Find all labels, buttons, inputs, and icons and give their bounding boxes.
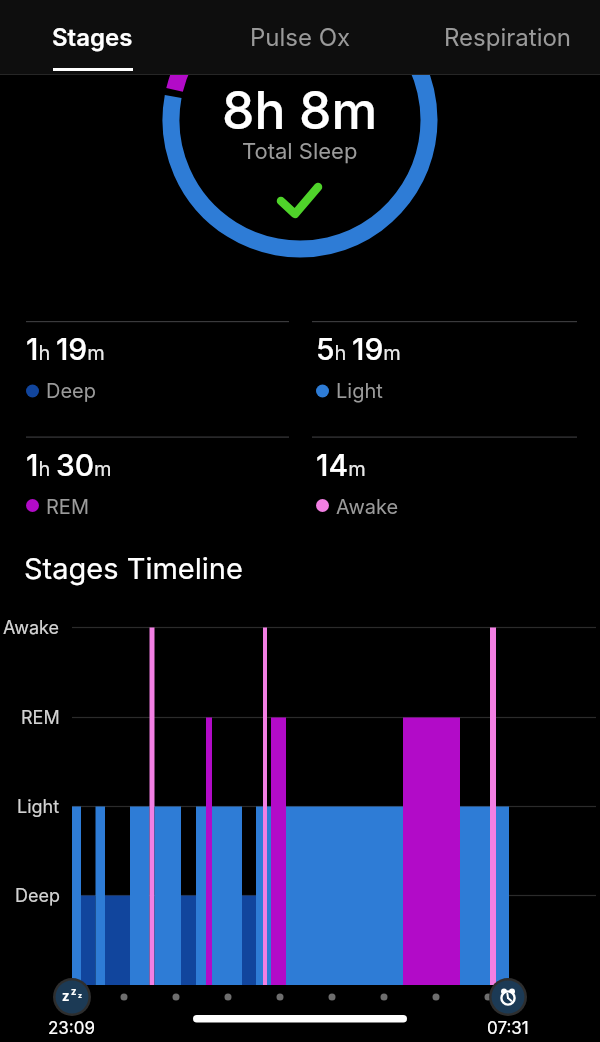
button[interactable] xyxy=(53,978,91,1016)
staticText: 8h 8m xyxy=(222,79,378,141)
staticText: Awake xyxy=(336,495,399,519)
staticText: Light xyxy=(336,379,383,403)
staticText: 14m xyxy=(316,447,366,483)
staticText: REM xyxy=(21,707,60,729)
staticText: Deep xyxy=(15,885,60,907)
staticText: 1h 19m xyxy=(26,331,105,367)
staticText: Light xyxy=(17,796,60,818)
button[interactable]: 07:31 xyxy=(458,1015,558,1041)
button[interactable]: 1h 30m xyxy=(26,447,288,552)
staticText: 07:31 xyxy=(487,1018,529,1039)
button[interactable]: Pulse Ox xyxy=(236,0,364,75)
button[interactable]: 14m xyxy=(316,447,578,552)
staticText: 5h 19m xyxy=(316,331,401,367)
staticText: z xyxy=(71,986,77,997)
staticText: Total Sleep xyxy=(242,138,358,165)
button[interactable] xyxy=(489,978,527,1016)
staticText: REM xyxy=(46,495,89,519)
staticText: Pulse Ox xyxy=(250,23,351,52)
staticText: Stages xyxy=(52,23,133,52)
button[interactable]: 23:09 xyxy=(22,1015,122,1041)
staticText: 1h 30m xyxy=(26,447,112,483)
staticText: z xyxy=(62,988,70,1004)
staticText: Awake xyxy=(3,617,60,639)
staticText: Deep xyxy=(46,379,96,403)
staticText: Respiration xyxy=(444,23,572,52)
button[interactable]: Stages xyxy=(40,0,145,75)
staticText: 23:09 xyxy=(48,1018,96,1039)
button[interactable]: 5h 19m xyxy=(316,331,578,436)
staticText: z xyxy=(78,991,83,999)
button[interactable]: Respiration xyxy=(436,0,580,75)
staticText: Stages Timeline xyxy=(24,551,243,586)
button[interactable]: 1h 19m xyxy=(26,331,288,436)
